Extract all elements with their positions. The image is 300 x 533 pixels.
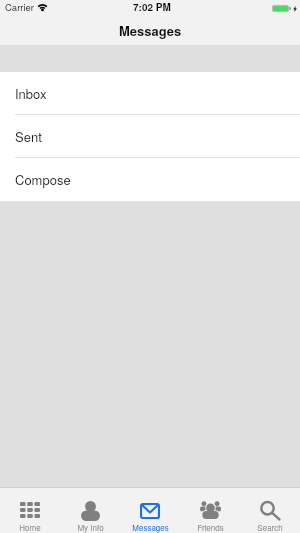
button[interactable]: Search [240,487,300,533]
staticText: Inbox [15,84,47,103]
staticText: Home [19,522,41,533]
button[interactable]: Home [0,487,60,533]
staticText: Compose [15,170,71,189]
button[interactable]: Sent [0,115,300,158]
button[interactable]: My Info [60,487,120,533]
button[interactable]: Messages [120,487,180,533]
staticText: My Info [77,522,104,533]
staticText: Sent [15,127,42,146]
staticText: 7:02 PM [133,0,171,14]
staticText: Messages [119,21,182,40]
staticText: Friends [197,522,224,533]
button[interactable]: Compose [0,158,300,201]
staticText: Messages [132,522,169,533]
staticText: Search [257,522,283,533]
staticText: Carrier [5,0,35,14]
button[interactable]: Inbox [0,72,300,115]
button[interactable]: Friends [180,487,240,533]
